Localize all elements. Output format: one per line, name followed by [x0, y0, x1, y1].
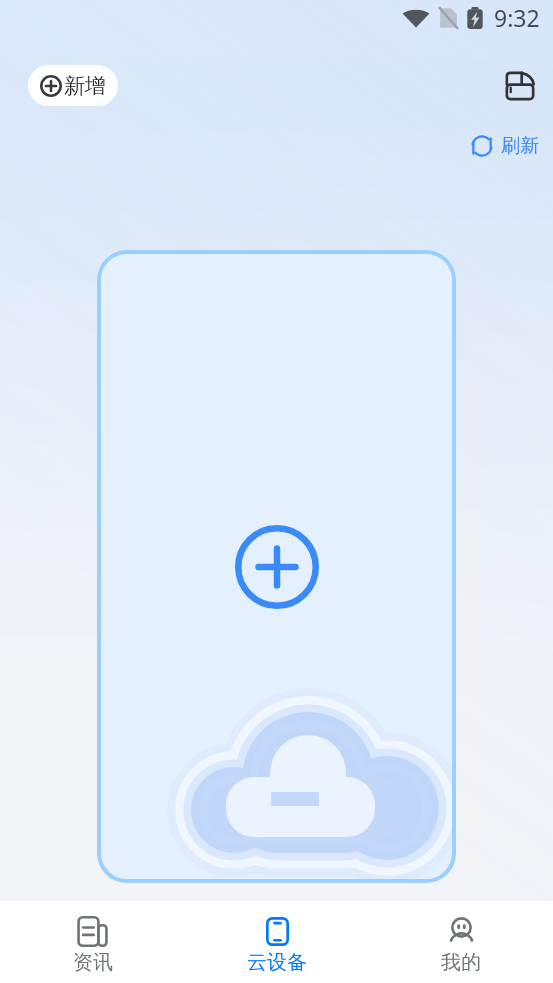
staticText: 我的: [441, 950, 481, 975]
staticText: 9:32: [494, 2, 540, 33]
button[interactable]: Refresh: [466, 130, 543, 162]
button[interactable]: 资讯: [0, 901, 185, 983]
staticText: 资讯: [73, 950, 113, 975]
button[interactable]: Add cloud device: [97, 250, 456, 883]
button[interactable]: Save: [498, 64, 542, 108]
staticText: 云设备: [247, 950, 307, 975]
other: Refresh: [470, 134, 494, 158]
button[interactable]: 云设备: [185, 901, 369, 983]
button[interactable]: 新增: [28, 65, 118, 106]
staticText: 新增: [64, 73, 106, 99]
button[interactable]: 我的: [369, 901, 553, 983]
staticText: 刷新: [501, 134, 539, 158]
